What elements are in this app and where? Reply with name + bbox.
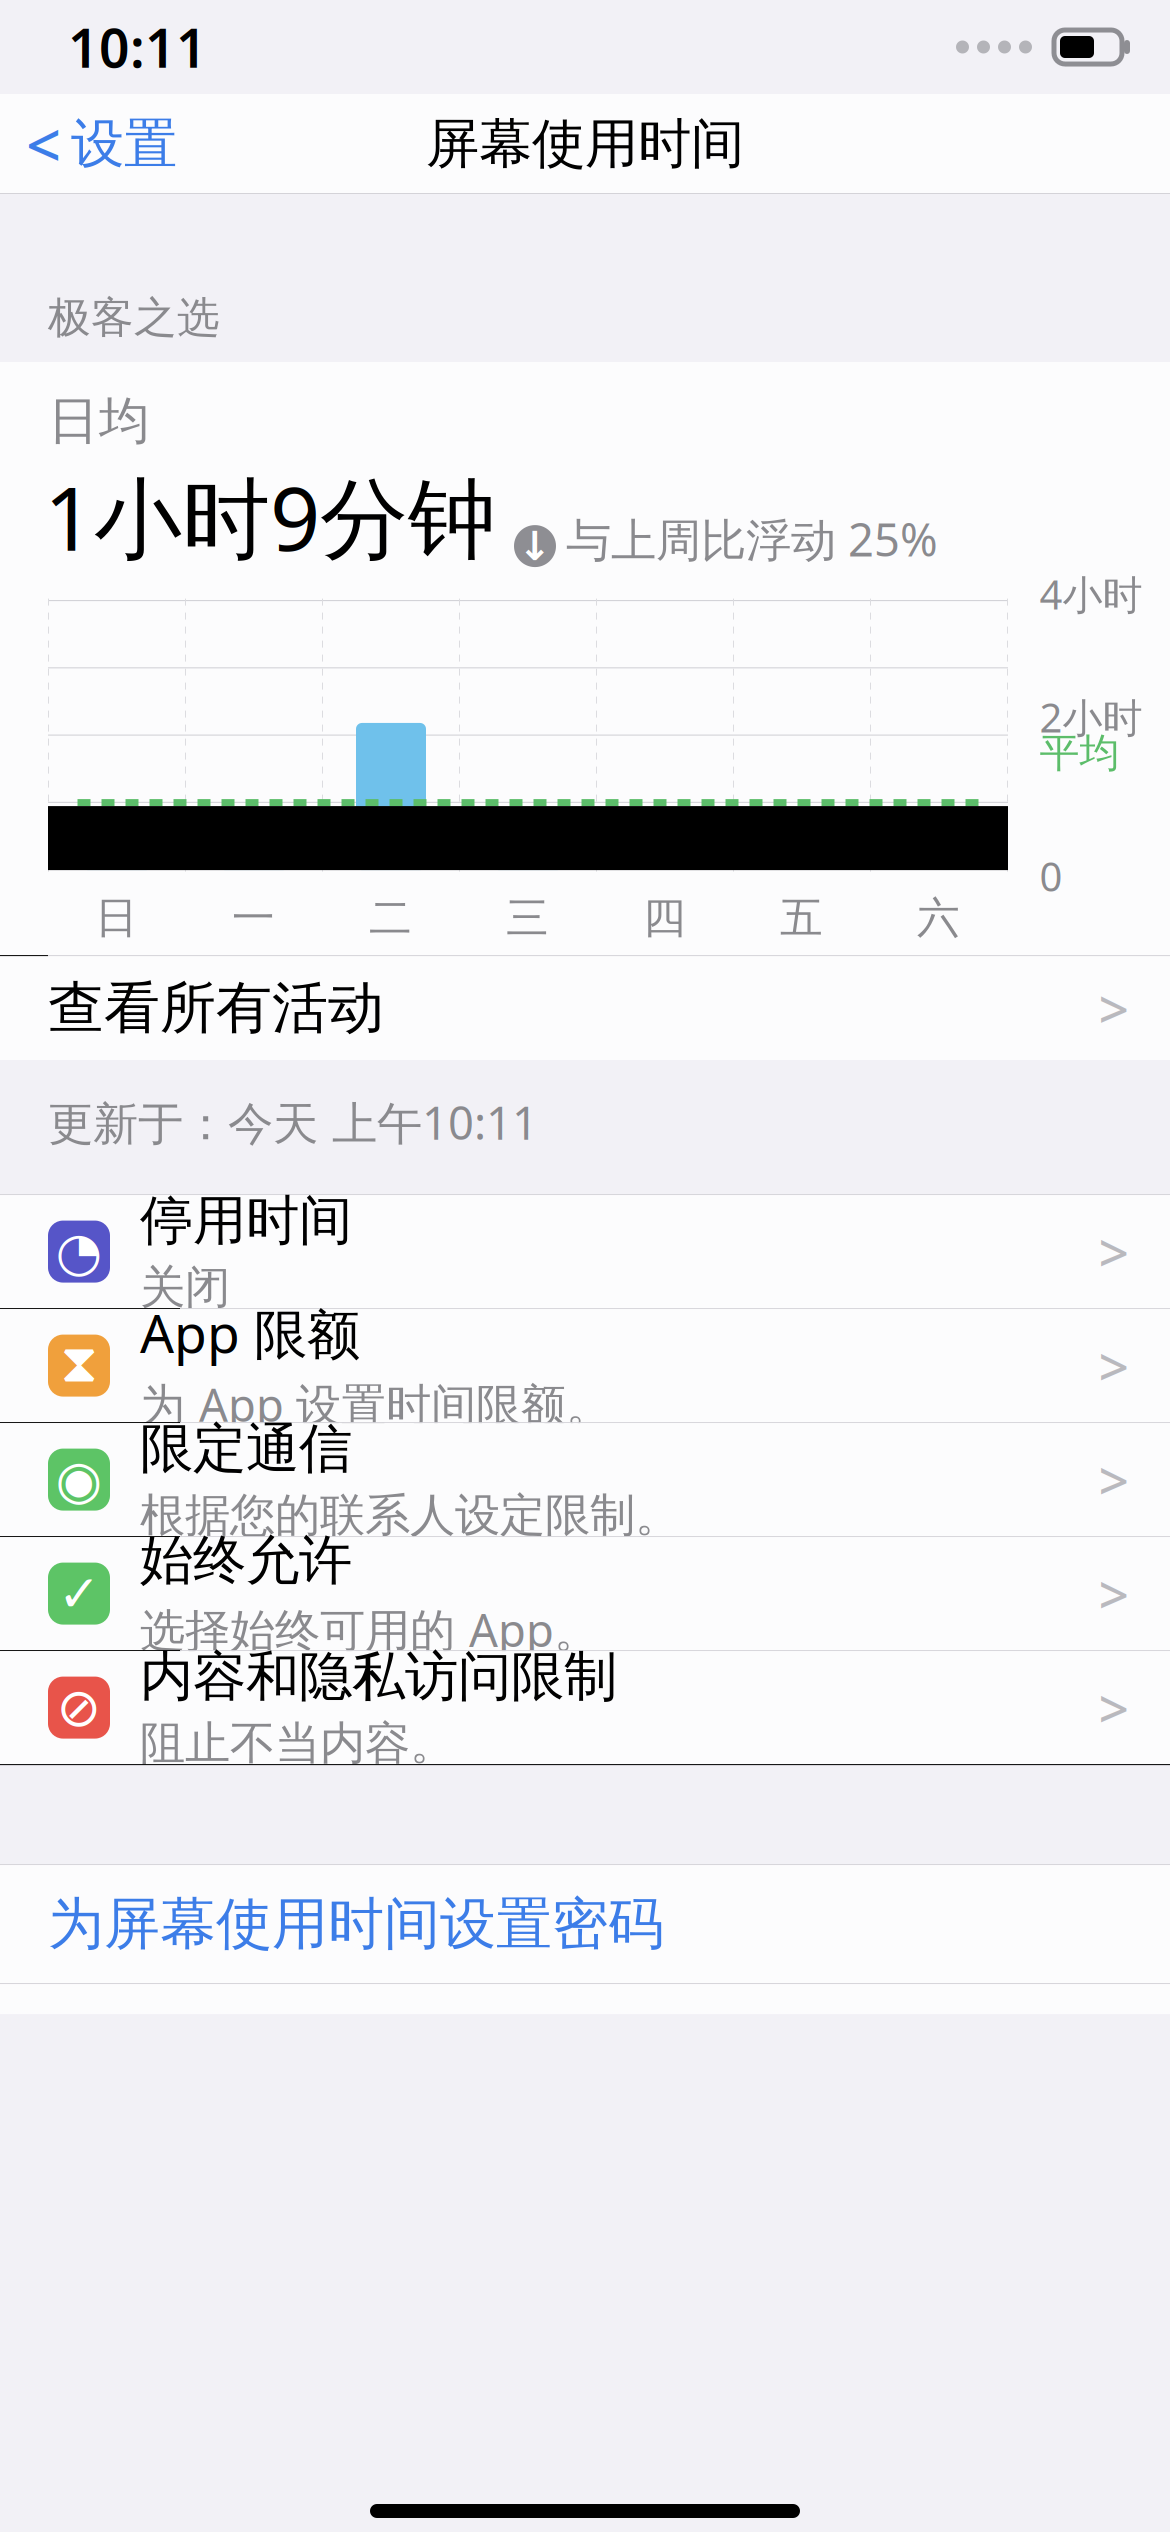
staticText: 10:11 (68, 12, 207, 82)
staticText: App 限额 (140, 1297, 360, 1368)
staticText: ◉ (55, 1449, 102, 1510)
staticText: ⧗ (60, 1340, 97, 1392)
staticText: 日均 (48, 390, 150, 452)
staticText: 限定通信 (140, 1416, 352, 1481)
staticText: 设置 (71, 111, 177, 177)
staticText: 停用时间 (140, 1188, 352, 1253)
staticText: > (1098, 1672, 1129, 1743)
staticText: 极客之选 (48, 292, 220, 344)
staticText: 六 (917, 892, 960, 944)
staticText: 1小时9分钟 (44, 458, 496, 575)
button[interactable]: ⧗ (0, 1309, 1170, 1423)
staticText: 一 (232, 892, 275, 944)
staticText: 三 (506, 892, 549, 944)
staticText: ⊘ (56, 1677, 101, 1738)
staticText: 0 (1039, 849, 1062, 903)
staticText: 更新于：今天 上午10:11 (48, 1092, 538, 1152)
button[interactable]: 查看所有活动 (0, 956, 1170, 1060)
staticText: 五 (780, 892, 823, 944)
staticText: 四 (643, 892, 686, 944)
staticText: > (1098, 1330, 1129, 1401)
staticText: > (1098, 1216, 1129, 1287)
staticText: 平均 (1039, 728, 1119, 778)
button[interactable]: ✓ (0, 1537, 1170, 1651)
staticText: 为屏幕使用时间设置密码 (48, 1890, 664, 1958)
button[interactable]: ◉ (0, 1423, 1170, 1537)
staticText: ✓ (58, 1565, 100, 1622)
staticText: 根据您的联系人设定限制。 (140, 1487, 680, 1543)
button[interactable]: ⊘ (0, 1651, 1170, 1765)
staticText: ↓ (518, 523, 552, 569)
staticText: 2小时 (1039, 690, 1142, 744)
staticText: > (1098, 973, 1129, 1043)
staticText: 屏幕使用时间 (426, 111, 744, 177)
staticText: 查看所有活动 (48, 974, 384, 1042)
staticText: 始终允许 (140, 1528, 352, 1593)
staticText: 4小时 (1039, 567, 1142, 621)
staticText: < (26, 103, 61, 185)
staticText: 与上周比浮动 25% (566, 509, 938, 569)
staticText: > (1098, 1558, 1129, 1629)
button[interactable]: 为屏幕使用时间设置密码 (0, 1865, 1170, 1983)
staticText: 日 (95, 892, 138, 944)
staticText: ◔ (55, 1221, 102, 1282)
button[interactable]: ◔ (0, 1195, 1170, 1309)
staticText: 内容和隐私访问限制 (140, 1644, 617, 1709)
staticText: 二 (369, 892, 412, 944)
staticText: > (1098, 1444, 1129, 1515)
staticText: 阻止不当内容。 (140, 1715, 455, 1771)
staticText: 选择始终可用的 App。 (140, 1599, 599, 1659)
staticText: 为 App 设置时间限额。 (140, 1374, 611, 1434)
staticText: 关闭 (140, 1259, 230, 1315)
button[interactable]: < (0, 89, 177, 199)
